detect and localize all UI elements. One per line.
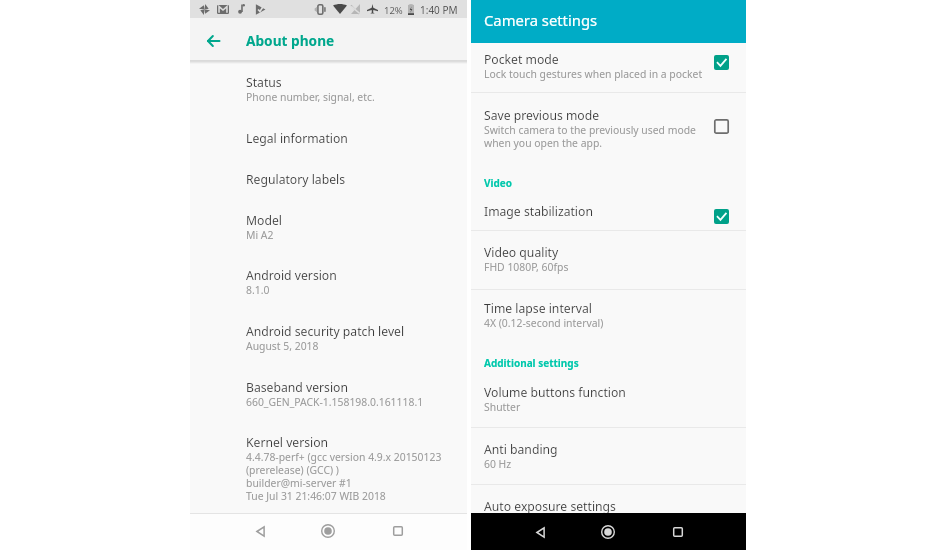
button[interactable]: Android version bbox=[190, 263, 467, 303]
staticText: 60 Hz bbox=[484, 457, 512, 471]
button[interactable]: Anti banding bbox=[471, 438, 746, 475]
button[interactable]: Baseband version bbox=[190, 375, 467, 415]
staticText: Image stabilization bbox=[484, 203, 593, 220]
button[interactable]: Status bbox=[190, 70, 467, 110]
staticText: Switch camera to the previously used mod… bbox=[484, 123, 696, 137]
staticText: 8.1.0 bbox=[246, 283, 270, 297]
staticText: Pocket mode bbox=[484, 51, 559, 68]
staticText: FHD 1080P, 60fps bbox=[484, 260, 569, 274]
staticText: Model bbox=[246, 212, 282, 229]
staticText: Anti banding bbox=[484, 441, 558, 458]
staticText: Mi A2 bbox=[246, 228, 274, 242]
button[interactable]: Volume buttons function bbox=[471, 381, 746, 418]
button[interactable]: Legal information bbox=[190, 126, 467, 153]
button[interactable]: Save previous mode bbox=[471, 104, 746, 154]
staticText: Baseband version bbox=[246, 379, 348, 396]
button[interactable]: Back bbox=[524, 516, 556, 548]
staticText: Regulatory labels bbox=[246, 171, 345, 188]
button[interactable]: Recents bbox=[382, 515, 414, 547]
button[interactable]: Back bbox=[244, 515, 276, 547]
staticText: Status bbox=[246, 74, 282, 91]
button[interactable]: Image stabilization bbox=[471, 200, 746, 224]
staticText: August 5, 2018 bbox=[246, 339, 319, 353]
staticText: Video quality bbox=[484, 244, 559, 261]
staticText: when you open the app. bbox=[484, 136, 603, 150]
staticText: 1:40 PM bbox=[420, 3, 458, 17]
button[interactable]: Recents bbox=[662, 516, 694, 548]
button[interactable]: Home bbox=[592, 516, 624, 548]
button[interactable]: Kernel version bbox=[190, 430, 467, 508]
staticText: 12% bbox=[384, 4, 403, 17]
button[interactable]: Regulatory labels bbox=[190, 167, 467, 194]
staticText: Kernel version bbox=[246, 434, 329, 451]
staticText: 4.4.78-perf+ (gcc version 4.9.x 20150123 bbox=[246, 450, 442, 464]
staticText: (prerelease) (GCC) ) bbox=[246, 463, 339, 477]
staticText: Tue Jul 31 21:46:07 WIB 2018 bbox=[246, 489, 386, 503]
staticText: Volume buttons function bbox=[484, 384, 626, 401]
staticText: Save previous mode bbox=[484, 107, 600, 124]
button[interactable]: Pocket mode bbox=[471, 48, 746, 85]
button[interactable]: Model bbox=[190, 208, 467, 248]
button[interactable]: Video quality bbox=[471, 241, 746, 278]
staticText: 4X (0.12-second interval) bbox=[484, 316, 604, 330]
staticText: Time lapse interval bbox=[484, 300, 592, 317]
staticText: Auto exposure settings bbox=[484, 498, 616, 515]
button[interactable]: Android security patch level bbox=[190, 319, 467, 359]
button[interactable]: Time lapse interval bbox=[471, 297, 746, 334]
staticText: Legal information bbox=[246, 130, 348, 147]
staticText: Additional settings bbox=[484, 356, 579, 370]
staticText: Phone number, signal, etc. bbox=[246, 90, 375, 104]
staticText: Video bbox=[484, 176, 513, 190]
staticText: Camera settings bbox=[484, 10, 598, 30]
button[interactable]: Back bbox=[193, 21, 233, 61]
staticText: builder@mi-server #1 bbox=[246, 476, 352, 490]
staticText: Shutter bbox=[484, 400, 521, 414]
staticText: About phone bbox=[246, 31, 335, 50]
staticText: Android version bbox=[246, 267, 337, 284]
staticText: Android security patch level bbox=[246, 323, 405, 340]
button[interactable]: Home bbox=[312, 515, 344, 547]
staticText: 660_GEN_PACK-1.158198.0.161118.1 bbox=[246, 395, 424, 409]
button[interactable]: Auto exposure settings bbox=[471, 495, 746, 519]
staticText: Lock touch gestures when placed in a poc… bbox=[484, 67, 703, 81]
